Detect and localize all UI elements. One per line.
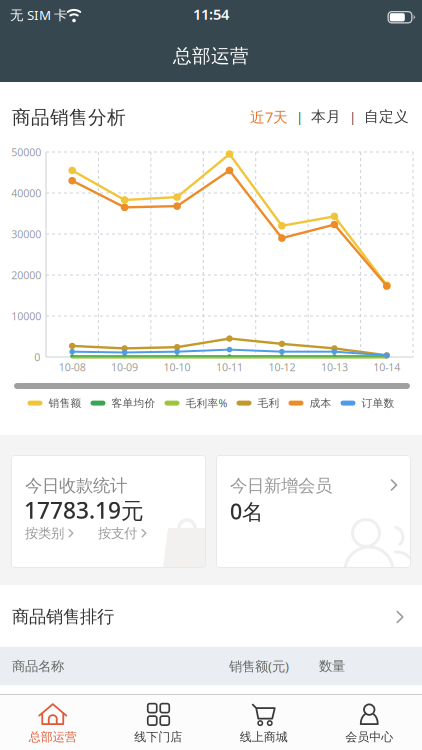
staticText: |	[296, 108, 303, 126]
staticText: 10-12	[268, 360, 295, 374]
staticText: 销售额	[48, 396, 81, 410]
staticText: 10-08	[59, 360, 86, 374]
staticText: 20000	[11, 268, 41, 282]
staticText: 30000	[11, 227, 41, 241]
staticText: 10-11	[216, 360, 243, 374]
staticText: 10-13	[321, 360, 348, 374]
staticText: 10-10	[164, 360, 191, 374]
staticText: 近7天	[250, 107, 288, 126]
staticText: 11:54	[193, 4, 229, 24]
staticText: 会员中心	[345, 730, 393, 744]
staticText: 10000	[11, 309, 41, 323]
button[interactable]: 总部运营	[0, 695, 105, 750]
button[interactable]: 按支付	[98, 525, 148, 541]
staticText: 商品销售分析	[12, 106, 126, 129]
button[interactable]: 自定义	[364, 108, 409, 126]
staticText: 线下门店	[134, 730, 182, 744]
staticText: 17783.19元	[24, 495, 144, 525]
staticText: 0	[34, 350, 40, 364]
staticText: 10-14	[373, 360, 400, 374]
button[interactable]: 线下门店	[105, 695, 211, 750]
staticText: 成本	[309, 396, 331, 410]
staticText: 毛利率%	[185, 396, 227, 410]
staticText: 本月	[311, 108, 341, 126]
staticText: 自定义	[364, 108, 409, 126]
staticText: 按支付	[98, 525, 137, 541]
staticText: 今日收款统计	[25, 475, 127, 496]
button[interactable]: 本月	[311, 108, 341, 126]
staticText: 今日新增会员	[230, 475, 332, 496]
staticText: 40000	[11, 186, 41, 200]
staticText: 线上商城	[240, 730, 288, 744]
staticText: 商品销售排行	[12, 606, 114, 627]
button[interactable]: 线上商城	[211, 695, 316, 750]
button[interactable]: 按类别	[25, 525, 75, 541]
staticText: 无 SIM 卡	[10, 6, 67, 24]
button[interactable]: 商品销售排行	[0, 585, 422, 647]
staticText: |	[349, 108, 356, 126]
staticText: 0名	[230, 497, 263, 525]
staticText: 按类别	[25, 525, 64, 541]
button[interactable]: 会员中心	[316, 695, 422, 750]
staticText: 总部运营	[29, 730, 77, 744]
staticText: 10-09	[111, 360, 138, 374]
staticText: 总部运营	[173, 44, 249, 67]
staticText: 销售额(元)	[229, 657, 289, 675]
button[interactable]: 近7天	[250, 107, 288, 126]
staticText: 数量	[319, 658, 345, 674]
button[interactable]: 今日新增会员	[216, 455, 411, 568]
staticText: 毛利	[257, 396, 279, 410]
staticText: 商品名称	[12, 658, 64, 674]
staticText: 50000	[11, 145, 41, 159]
staticText: 订单数	[361, 396, 394, 410]
staticText: 客单均价	[111, 396, 155, 410]
